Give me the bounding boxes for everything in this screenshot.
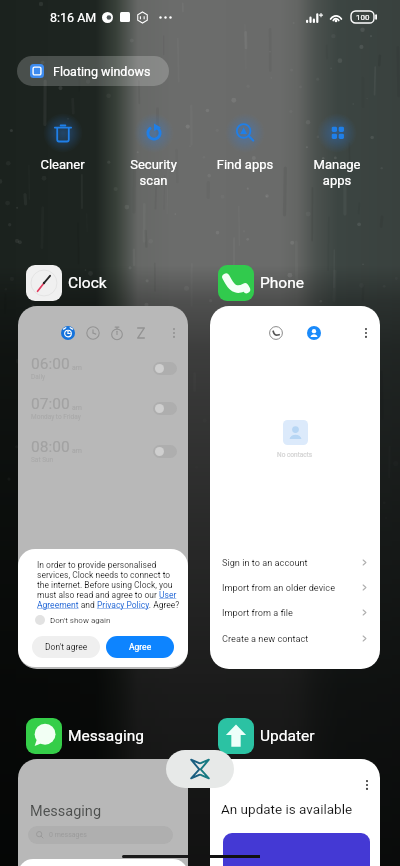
staticText: Import from an older device [222,582,336,593]
staticText: 100 [356,13,370,22]
button[interactable]: 06:00 [18,306,188,669]
button[interactable]: No contacts [210,306,380,669]
staticText: Manage apps [291,157,383,188]
staticText: Floating windows [53,64,151,79]
staticText: 08:00 [31,438,70,456]
staticText: Agree [129,642,152,652]
staticText: 0 messages [49,831,87,839]
button[interactable]: Floating windows [17,56,169,86]
button[interactable]: Import from a file [210,600,380,625]
staticText: Find apps [199,157,291,172]
button[interactable]: Don't show again [35,615,111,625]
button[interactable] [153,402,177,415]
staticText: Updater [260,727,315,745]
button[interactable]: An update is available [210,759,380,866]
staticText: Don't show again [50,616,111,625]
staticText: am [72,404,82,412]
button[interactable]: Close all apps [166,750,234,788]
button[interactable]: Security scan [108,116,199,188]
staticText: Messaging [68,727,144,745]
button[interactable]: Sign in to an account [210,550,380,575]
button[interactable] [153,362,177,375]
button[interactable]: Find apps [199,116,291,172]
button[interactable]: Agree [106,636,174,658]
staticText: Messaging [30,803,102,820]
button[interactable]: Import from an older device [210,575,380,600]
staticText: 06:00 [31,355,70,373]
staticText: Daily [31,373,46,381]
staticText: 07:00 [31,395,70,413]
staticText: Sat Sun [31,456,54,464]
staticText: 8:16 AM [50,10,97,25]
staticText: Phone [260,274,304,292]
staticText: Sign in to an account [222,557,308,568]
staticText: am [72,447,82,455]
button[interactable] [153,445,177,458]
button[interactable]: Cleaner [17,116,108,172]
button[interactable]: Don't agree [32,636,100,658]
staticText: Monday to Friday [31,413,81,421]
staticText: Don't agree [45,642,88,652]
staticText: Create a new contact [222,633,309,644]
button[interactable]: Messaging [18,759,188,866]
staticText: am [72,364,82,372]
staticText: No contacts [277,451,313,459]
button[interactable]: Manage apps [291,116,383,188]
staticText: Import from a file [222,607,293,618]
button[interactable]: Create a new contact [210,626,380,651]
staticText: In order to provide personalised service… [37,560,183,610]
staticText: Security scan [108,157,199,188]
staticText: Clock [68,274,107,292]
staticText: An update is available [221,801,353,817]
staticText: Cleaner [17,157,108,172]
